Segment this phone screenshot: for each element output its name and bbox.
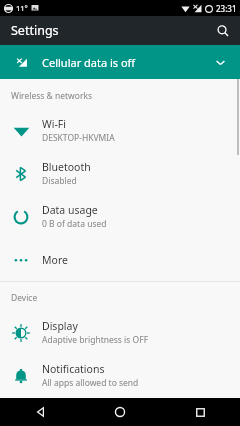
button[interactable]: Display — [0, 311, 240, 354]
button[interactable]: Home — [80, 398, 160, 426]
button[interactable]: More — [0, 238, 240, 281]
button[interactable]: Bluetooth — [0, 152, 240, 195]
button[interactable]: Data usage — [0, 195, 240, 238]
staticText: Display — [42, 319, 78, 333]
button[interactable]: Recent apps — [160, 398, 240, 426]
button[interactable]: Notifications — [0, 354, 240, 397]
staticText: Adaptive brightness is OFF — [42, 334, 149, 346]
staticText: DESKTOP-HKVMIA — [42, 132, 115, 144]
button[interactable]: Cellular data is off — [0, 45, 240, 79]
button[interactable]: Search — [212, 20, 234, 42]
staticText: Bluetooth — [42, 160, 91, 174]
staticText: Settings — [11, 22, 59, 39]
staticText: Notifications — [42, 362, 105, 376]
staticText: Disabled — [42, 175, 77, 187]
button[interactable]: Wi-Fi — [0, 109, 240, 152]
staticText: Cellular data is off — [42, 55, 210, 70]
staticText: Wi-Fi — [42, 117, 67, 131]
staticText: Device — [11, 292, 38, 304]
staticText: Wireless & networks — [11, 90, 93, 102]
button[interactable]: Back — [0, 398, 80, 426]
staticText: 23:31 — [216, 3, 237, 14]
other: Expand — [210, 52, 230, 72]
staticText: All apps allowed to send — [42, 377, 139, 389]
staticText: 11° — [16, 3, 28, 13]
staticText: More — [42, 253, 68, 267]
staticText: 0 B of data used — [42, 218, 107, 230]
staticText: Data usage — [42, 203, 98, 217]
